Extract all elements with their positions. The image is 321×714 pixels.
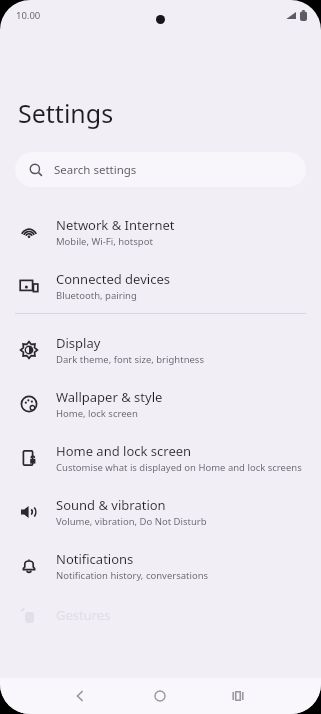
staticText: Gestures (56, 606, 111, 624)
staticText: Mobile, Wi-Fi, hotspot (56, 235, 153, 248)
staticText: Wallpaper & style (56, 388, 163, 406)
button[interactable]: Notifications (0, 539, 321, 593)
staticText: Notification history, conversations (56, 569, 209, 582)
button[interactable]: Sound & vibration (0, 485, 321, 539)
button[interactable]: Search settings (15, 152, 306, 187)
staticText: Settings (18, 96, 114, 130)
staticText: Sound & vibration (56, 496, 166, 514)
staticText: Customise what is displayed on Home and … (56, 461, 302, 474)
staticText: Network & Internet (56, 216, 175, 234)
button[interactable]: Connected devices (0, 259, 321, 313)
staticText: Dark theme, font size, brightness (56, 353, 204, 366)
staticText: Bluetooth, pairing (56, 289, 137, 302)
button[interactable]: Wallpaper & style (0, 377, 321, 431)
staticText: Connected devices (56, 270, 170, 288)
staticText: Search settings (54, 162, 137, 178)
button[interactable]: Back (62, 678, 98, 714)
button[interactable]: Home and lock screen (0, 431, 321, 485)
button[interactable]: Network & Internet (0, 205, 321, 259)
staticText: Notifications (56, 550, 134, 568)
staticText: 10.00 (16, 9, 41, 22)
staticText: Volume, vibration, Do Not Disturb (56, 515, 207, 528)
button[interactable]: Recent apps (220, 678, 256, 714)
staticText: Display (56, 334, 101, 352)
staticText: Home and lock screen (56, 442, 192, 460)
button[interactable]: Home (142, 678, 178, 714)
staticText: Home, lock screen (56, 407, 138, 420)
button[interactable]: Display (0, 323, 321, 377)
